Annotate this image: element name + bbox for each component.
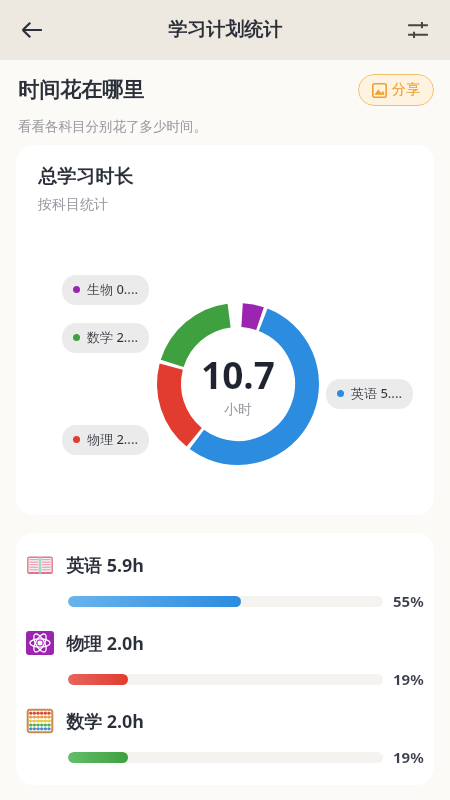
staticText: 小时: [224, 401, 252, 419]
button[interactable]: 分享: [358, 74, 434, 106]
staticText: 生物 0....: [87, 280, 138, 298]
button[interactable]: 英语 5.9h: [16, 551, 434, 611]
staticText: 19%: [393, 747, 424, 767]
staticText: 英语 5....: [351, 384, 402, 402]
staticText: 学习计划统计: [168, 18, 282, 42]
staticText: 看看各科目分别花了多少时间。: [18, 118, 207, 135]
staticText: 数学 2.0h: [66, 709, 145, 734]
button[interactable]: 总学习时长: [16, 145, 434, 515]
staticText: 时间花在哪里: [18, 77, 144, 103]
button[interactable]: Back: [10, 8, 54, 52]
button[interactable]: 生物 0....: [62, 273, 149, 305]
staticText: 10.7: [201, 349, 275, 399]
staticText: 物理 2.0h: [66, 631, 145, 656]
button[interactable]: Filter settings: [396, 8, 440, 52]
staticText: 分享: [392, 81, 420, 99]
staticText: 数学 2....: [87, 328, 138, 346]
staticText: 55%: [393, 591, 424, 611]
staticText: 英语 5.9h: [66, 553, 145, 578]
button[interactable]: 英语 5....: [326, 377, 413, 409]
staticText: 物理 2....: [87, 430, 138, 448]
button[interactable]: 物理 2....: [62, 423, 149, 455]
button[interactable]: 物理 2.0h: [16, 629, 434, 689]
button[interactable]: 数学 2....: [62, 321, 149, 353]
button[interactable]: 数学 2.0h: [16, 707, 434, 767]
staticText: 按科目统计: [38, 196, 108, 214]
staticText: 总学习时长: [38, 165, 133, 189]
staticText: 19%: [393, 669, 424, 689]
